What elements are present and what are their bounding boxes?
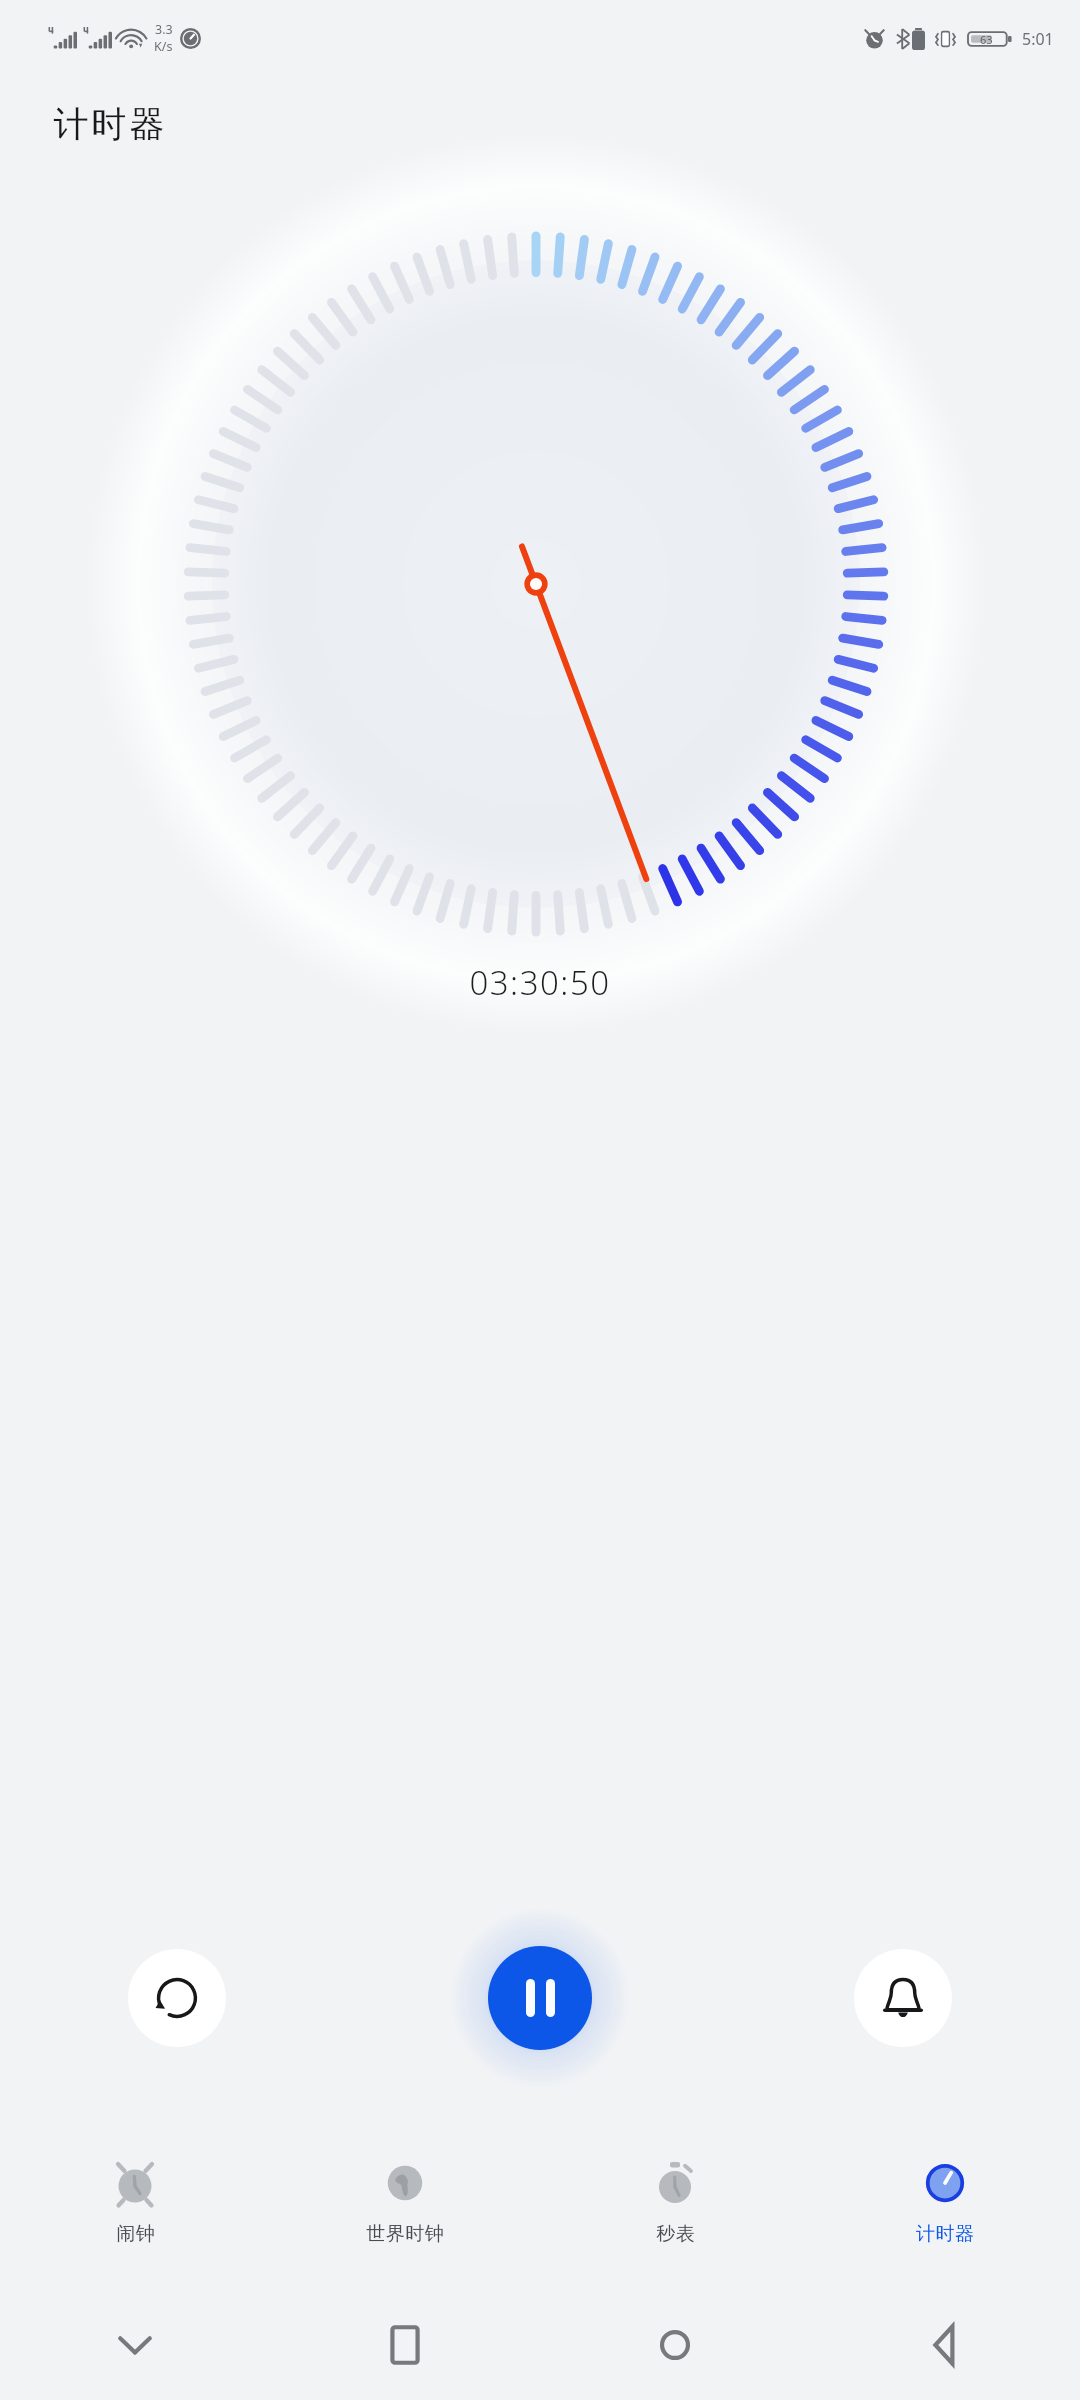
staticText: 秒表 [656, 2222, 695, 2246]
button[interactable]: 闹钟 [0, 2140, 270, 2246]
staticText: 5:01 [1022, 28, 1054, 50]
staticText: 3.3 [155, 21, 173, 38]
button[interactable]: Home [540, 2290, 810, 2400]
staticText: 03:30:50 [469, 960, 611, 1005]
button[interactable]: Reset [128, 1949, 226, 2047]
staticText: 世界时钟 [366, 2222, 444, 2246]
button[interactable]: Pause [488, 1946, 592, 2050]
button[interactable]: Collapse [0, 2290, 270, 2400]
button[interactable]: 秒表 [540, 2140, 810, 2246]
staticText: 计时器 [916, 2222, 975, 2246]
button[interactable]: 世界时钟 [270, 2140, 540, 2246]
button[interactable]: Back [810, 2290, 1080, 2400]
button[interactable]: Recents [270, 2290, 540, 2400]
button[interactable]: 计时器 [810, 2140, 1080, 2246]
staticText: 闹钟 [116, 2222, 155, 2246]
staticText: 计时器 [52, 102, 166, 146]
staticText: 63 [980, 32, 993, 47]
button[interactable]: Ringtone [854, 1949, 952, 2047]
staticText: K/s [154, 38, 173, 55]
